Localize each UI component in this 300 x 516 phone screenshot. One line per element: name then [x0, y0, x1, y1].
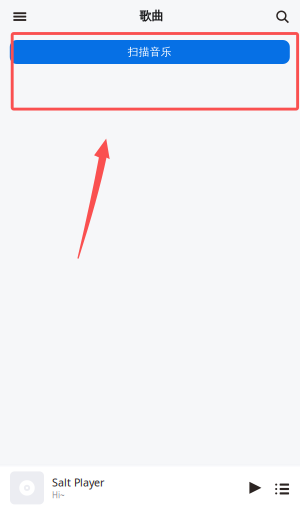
staticText: Salt Player [52, 475, 104, 489]
button[interactable]: Play [245, 478, 265, 498]
staticText: 扫描音乐 [128, 45, 172, 58]
button[interactable]: 扫描音乐 [10, 40, 290, 64]
button[interactable]: Search [270, 5, 294, 29]
button[interactable]: Playlist [272, 479, 292, 499]
staticText: Hi~ [52, 490, 65, 500]
button[interactable]: Salt Player [10, 471, 190, 504]
button[interactable]: Menu [8, 5, 32, 29]
staticText: 歌曲 [139, 9, 163, 23]
